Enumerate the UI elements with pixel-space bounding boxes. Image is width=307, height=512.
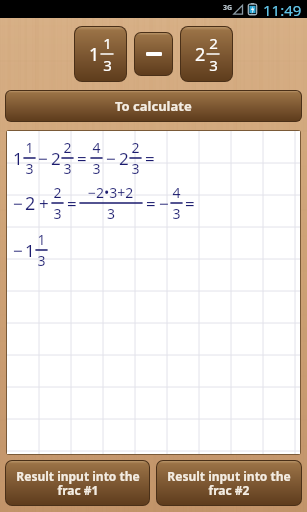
staticText: 2	[209, 33, 218, 53]
staticText: 3G	[223, 3, 233, 13]
staticText: 1	[103, 33, 112, 53]
staticText: =	[185, 192, 195, 215]
staticText: 2	[131, 138, 140, 157]
staticText: 1	[25, 239, 35, 262]
button[interactable]: To calculate	[6, 91, 301, 121]
staticText: 3	[53, 204, 62, 223]
button[interactable]: Result input into the frac #2	[157, 461, 301, 505]
staticText: 3	[103, 55, 112, 75]
staticText: 2	[25, 191, 36, 216]
staticText: 3	[37, 251, 46, 270]
staticText: −	[13, 192, 23, 215]
staticText: To calculate	[115, 97, 192, 115]
button[interactable]: 1	[75, 27, 126, 81]
staticText: 1	[89, 42, 100, 67]
staticText: 4	[92, 138, 101, 157]
button[interactable]: Subtract	[135, 33, 172, 75]
staticText: Result input into the frac #1	[16, 468, 140, 499]
staticText: =	[77, 147, 87, 170]
staticText: −	[159, 192, 169, 215]
staticText: 3	[107, 204, 116, 223]
staticText: 2	[53, 183, 62, 202]
staticText: 3	[63, 159, 72, 178]
staticText: 1	[25, 138, 34, 157]
staticText: =	[67, 192, 77, 215]
staticText: 2	[51, 147, 61, 170]
staticText: 3	[25, 159, 34, 178]
staticText: 11:49	[263, 0, 302, 18]
staticText: −2•3+2	[88, 183, 134, 202]
staticText: 3	[131, 159, 140, 178]
staticText: 2	[63, 138, 72, 157]
staticText: 1	[13, 147, 23, 170]
staticText: 3	[92, 159, 101, 178]
staticText: 2	[119, 147, 129, 170]
button[interactable]: 2	[181, 27, 232, 81]
staticText: 3	[172, 204, 181, 223]
staticText: +	[39, 192, 49, 215]
staticText: 1	[37, 230, 46, 249]
staticText: 4	[172, 183, 181, 202]
staticText: Result input into the frac #2	[167, 468, 291, 499]
staticText: −	[38, 147, 48, 170]
staticText: −	[13, 239, 23, 262]
staticText: =	[145, 147, 155, 170]
staticText: =	[146, 192, 156, 215]
button[interactable]: Result input into the frac #1	[6, 461, 149, 505]
staticText: −	[106, 147, 116, 170]
staticText: 2	[195, 42, 206, 67]
staticText: 3	[209, 55, 218, 75]
